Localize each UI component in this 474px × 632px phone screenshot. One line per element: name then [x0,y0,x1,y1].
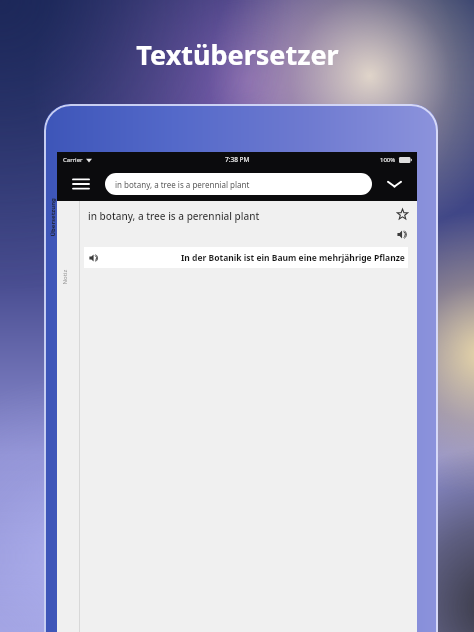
staticText: Übersetzung [48,197,56,236]
button[interactable]: Expand [372,167,417,201]
staticText: 7:38 PM [225,155,250,164]
button[interactable]: Notiz [58,267,78,293]
button[interactable]: Speak source [394,226,410,242]
staticText: 100% [380,156,396,164]
staticText: in botany, a tree is a perennial plant [115,179,250,190]
staticText: Notiz [60,269,68,284]
other: Speak translation [89,253,99,263]
staticText: in botany, a tree is a perennial plant [88,209,260,223]
button[interactable]: in botany, a tree is a perennial plant [105,173,372,195]
button[interactable]: Speak translation [84,247,408,268]
staticText: Textübersetzer [136,36,339,73]
staticText: In der Botanik ist ein Baum eine mehrjäh… [181,252,405,264]
button[interactable]: Menu [57,167,105,201]
staticText: Carrier [63,156,83,164]
button[interactable]: Favorite [394,206,410,222]
